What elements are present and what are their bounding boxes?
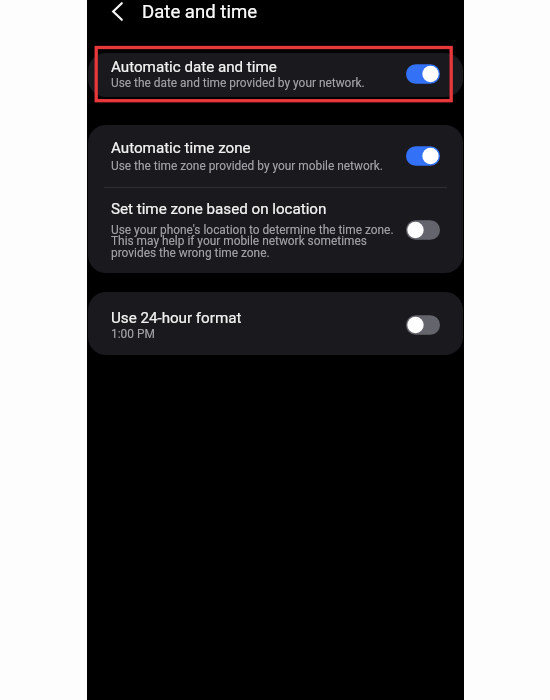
button[interactable]: Automatic date and time, on [405,63,441,85]
staticText: Set time zone based on location [111,200,327,218]
staticText: Use the date and time provided by your n… [111,76,365,90]
button[interactable]: Automatic time zone, on [405,145,441,167]
staticText: Use 24-hour format [111,309,242,327]
button[interactable]: Set time zone based on location [88,188,463,273]
staticText: Use your phone's location to determine t… [111,223,394,260]
button[interactable]: Automatic date and time [88,53,463,97]
button[interactable]: Automatic time zone [88,125,463,187]
staticText: Automatic date and time [111,58,277,76]
staticText: Automatic time zone [111,139,251,157]
button[interactable]: Use 24-hour format, off [405,314,441,336]
button[interactable]: Set time zone based on location, off [405,219,441,241]
staticText: Date and time [142,1,258,23]
staticText: 1:00 PM [111,327,155,341]
button[interactable]: Use 24-hour format [88,292,463,355]
button[interactable]: Back [97,0,137,31]
staticText: Use the time zone provided by your mobil… [111,159,383,173]
